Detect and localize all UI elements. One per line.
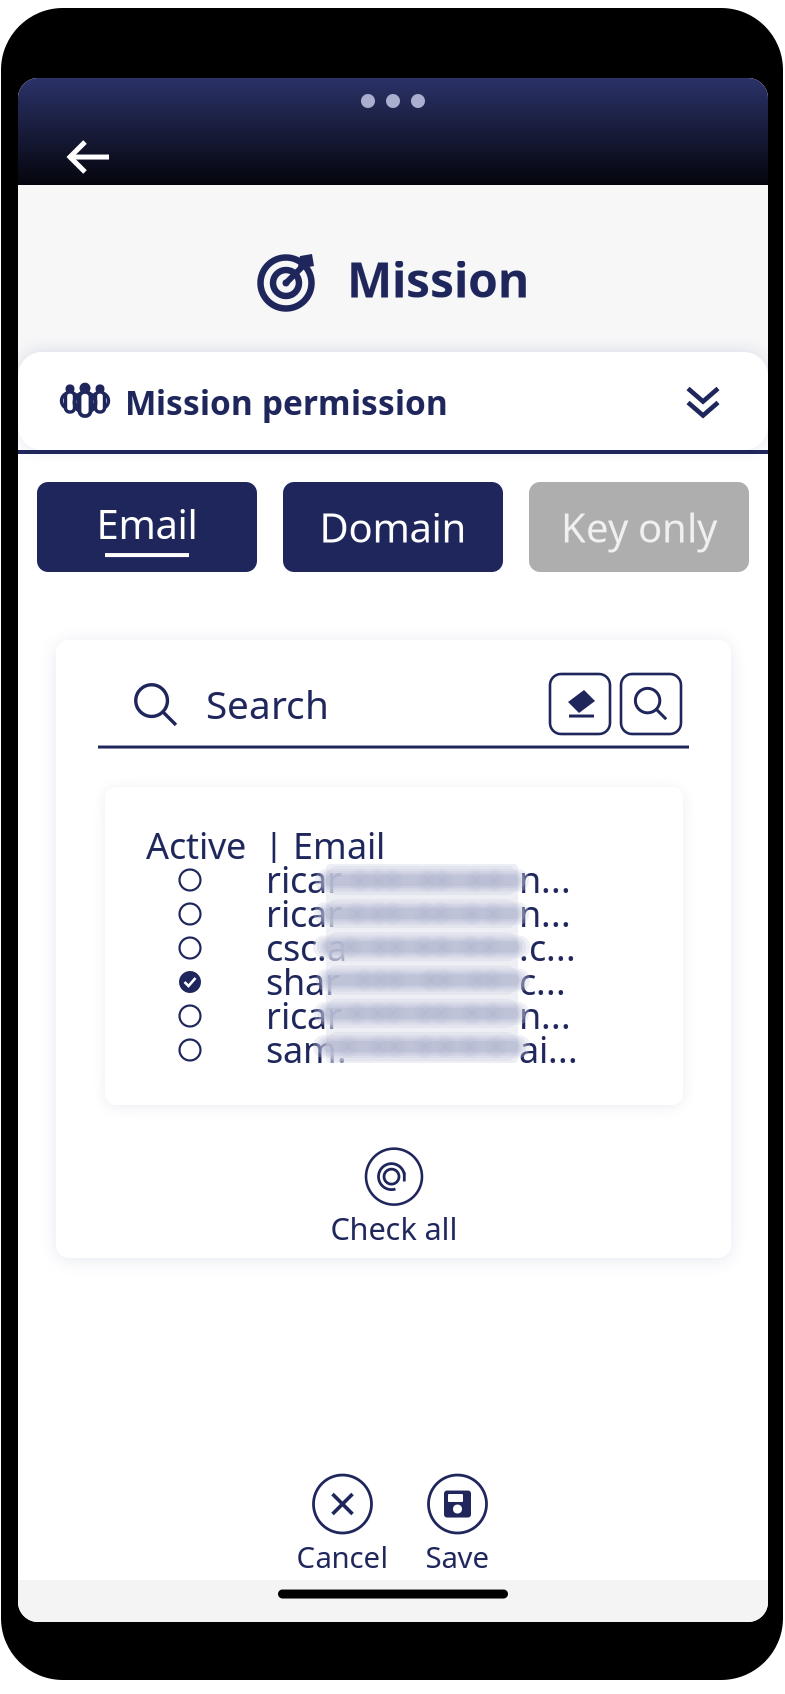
button[interactable]: ricar — [105, 863, 683, 897]
button[interactable]: ricar — [105, 999, 683, 1033]
staticText: Save — [425, 1537, 489, 1576]
staticText: n... — [519, 991, 571, 1039]
staticText: ricar — [266, 991, 342, 1039]
button[interactable]: Save — [425, 1474, 489, 1576]
button[interactable]: sam. — [105, 1033, 683, 1067]
button[interactable]: Mission permission — [18, 352, 768, 450]
staticText: shar — [266, 957, 340, 1005]
staticText: Key only — [561, 500, 717, 553]
button[interactable]: Email — [37, 482, 257, 572]
staticText: Email — [96, 497, 197, 550]
staticText: csc.a — [266, 923, 347, 971]
button[interactable]: Cancel — [296, 1474, 388, 1576]
button[interactable]: Domain — [283, 482, 503, 572]
staticText: Cancel — [296, 1537, 388, 1576]
button[interactable]: Search — [621, 674, 681, 734]
staticText: Mission permission — [125, 380, 448, 424]
staticText: Check all — [330, 1208, 457, 1248]
staticText: c... — [519, 957, 566, 1005]
staticText: ricar — [266, 855, 342, 903]
staticText: n... — [519, 889, 571, 937]
button[interactable]: ricar — [105, 897, 683, 931]
staticText: Domain — [319, 500, 466, 553]
staticText: sam. — [266, 1025, 347, 1073]
button[interactable]: Key only — [529, 482, 749, 572]
staticText: n... — [519, 855, 571, 903]
staticText: Active | Email — [146, 821, 385, 869]
staticText: Mission — [347, 247, 529, 311]
staticText: ai... — [519, 1025, 578, 1073]
button[interactable]: Clear search — [550, 674, 610, 734]
staticText: ricar — [266, 889, 342, 937]
button[interactable]: Check all — [330, 1148, 457, 1248]
staticText: Search — [206, 678, 329, 730]
button[interactable]: csc.a — [105, 931, 683, 965]
button[interactable]: shar — [105, 965, 683, 999]
button[interactable]: Back — [46, 120, 132, 194]
staticText: .c... — [519, 923, 576, 971]
